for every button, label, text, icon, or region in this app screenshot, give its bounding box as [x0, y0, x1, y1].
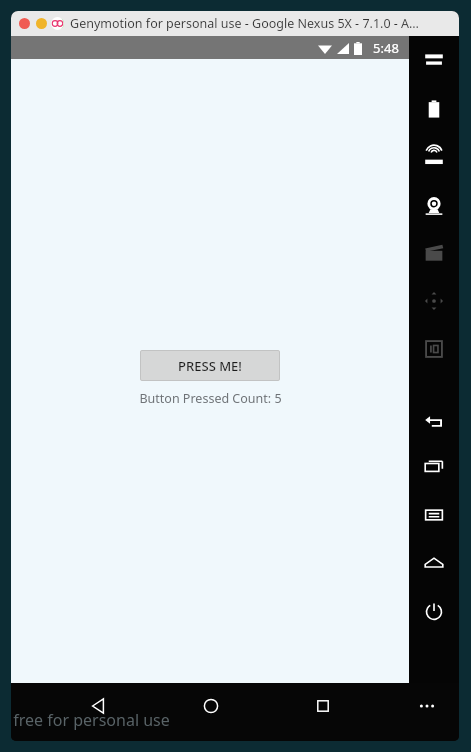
button[interactable]: Identifiers: [409, 336, 459, 362]
staticText: free for personal use: [13, 709, 170, 731]
button[interactable]: Menu: [409, 502, 459, 528]
button[interactable]: GPS: [409, 144, 459, 170]
button[interactable]: Camera: [409, 192, 459, 218]
button[interactable]: Zoom: [53, 18, 64, 29]
button[interactable]: Recents: [409, 454, 459, 480]
button[interactable]: Home: [409, 550, 459, 576]
button[interactable]: Close: [19, 18, 30, 29]
button[interactable]: Recent apps: [303, 689, 343, 723]
button[interactable]: Battery: [409, 96, 459, 122]
button[interactable]: Minimise: [36, 18, 47, 29]
button[interactable]: OpenGAPPS: [409, 48, 459, 74]
staticText: Button Pressed Count: 5: [139, 390, 282, 407]
button[interactable]: Screen record: [409, 240, 459, 266]
button[interactable]: Home: [191, 689, 231, 723]
button[interactable]: More options: [407, 689, 447, 723]
staticText: PRESS ME!: [178, 357, 242, 375]
button[interactable]: Back: [409, 406, 459, 432]
button[interactable]: PRESS ME!: [140, 350, 280, 381]
button[interactable]: Back: [79, 689, 119, 723]
button[interactable]: Accelerometer: [409, 288, 459, 314]
staticText: Genymotion for personal use - Google Nex…: [70, 15, 419, 32]
staticText: 5:48: [373, 39, 399, 57]
button[interactable]: Power: [409, 598, 459, 624]
